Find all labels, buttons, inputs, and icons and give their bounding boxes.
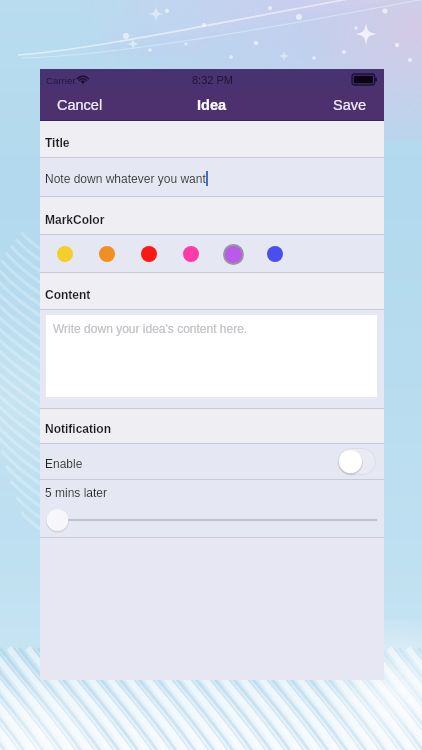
button[interactable]: purple mark colour bbox=[220, 241, 246, 267]
staticText: Cancel bbox=[57, 97, 103, 113]
staticText: Carrier bbox=[46, 75, 76, 86]
staticText: Title bbox=[45, 136, 70, 149]
other: Battery full bbox=[352, 74, 377, 85]
button[interactable]: Enable notification bbox=[337, 448, 376, 475]
button[interactable]: pink mark colour bbox=[178, 241, 204, 267]
button[interactable]: Delay slider bbox=[40, 509, 384, 537]
button[interactable]: orange mark colour bbox=[94, 241, 120, 267]
staticText: Idea bbox=[197, 97, 227, 113]
button[interactable]: red mark colour bbox=[136, 241, 162, 267]
staticText: Content bbox=[45, 288, 91, 301]
staticText: 5 mins later bbox=[45, 486, 108, 499]
other: Wi-Fi signal bbox=[77, 75, 89, 84]
button[interactable]: Write down your idea's content here. bbox=[46, 315, 377, 397]
button[interactable]: Save bbox=[319, 89, 384, 121]
button[interactable]: Note down whatever you want bbox=[40, 158, 384, 196]
staticText: Notification bbox=[45, 422, 111, 435]
staticText: Note down whatever you want bbox=[45, 172, 206, 185]
staticText: 8:32 PM bbox=[192, 74, 233, 86]
staticText: Save bbox=[333, 97, 367, 113]
staticText: Enable bbox=[45, 457, 83, 470]
button[interactable]: Cancel bbox=[40, 89, 117, 121]
staticText: MarkColor bbox=[45, 213, 105, 226]
button[interactable]: blue mark colour bbox=[262, 241, 288, 267]
button[interactable]: Enable bbox=[40, 444, 384, 479]
staticText: Write down your idea's content here. bbox=[53, 322, 248, 335]
button[interactable]: yellow mark colour bbox=[52, 241, 78, 267]
